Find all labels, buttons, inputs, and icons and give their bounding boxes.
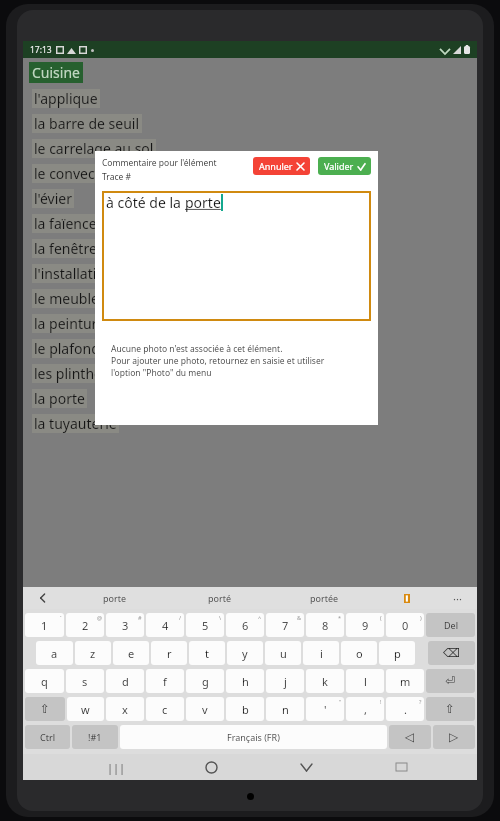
button[interactable]: Recents (69, 754, 164, 780)
button[interactable]: la porte (32, 389, 87, 408)
button[interactable]: ⇧ (426, 697, 475, 721)
button[interactable]: le meuble (32, 289, 101, 308)
button[interactable]: . (386, 697, 424, 721)
button[interactable]: a (36, 641, 73, 665)
button[interactable]: h (226, 669, 264, 693)
button[interactable]: 3 (106, 613, 144, 637)
button[interactable]: 2 (66, 613, 104, 637)
staticText: !#1 (88, 731, 102, 743)
button[interactable]: !#1 (72, 725, 118, 749)
button[interactable]: b (226, 697, 264, 721)
button[interactable]: l'évier (32, 189, 74, 208)
button[interactable]: n (266, 697, 304, 721)
button[interactable]: 8 (306, 613, 344, 637)
button[interactable]: Cuisine (29, 62, 83, 83)
button[interactable]: la faïence (32, 214, 99, 233)
button[interactable]: o (341, 641, 377, 665)
button[interactable]: Del (426, 613, 475, 637)
staticText: n (282, 702, 289, 717)
staticText: z (90, 646, 96, 661)
button[interactable]: l (346, 669, 384, 693)
button[interactable]: à côté de la (102, 191, 371, 321)
button[interactable]: ▷ (433, 725, 475, 749)
button[interactable]: 5 (186, 613, 224, 637)
staticText: " (339, 698, 342, 705)
button[interactable]: q (25, 669, 64, 693)
button[interactable]: r (151, 641, 187, 665)
button[interactable]: la peinture (32, 314, 107, 333)
button[interactable]: Français (FR) (120, 725, 387, 749)
staticText: la fenêtre (34, 239, 97, 258)
button[interactable]: 9 (346, 613, 384, 637)
button[interactable]: Ctrl (25, 725, 70, 749)
staticText: Pour ajouter une photo, retournez en sai… (111, 355, 325, 367)
button[interactable]: porte (63, 587, 167, 609)
button[interactable]: le carrelage au sol (32, 139, 156, 158)
staticText: e (128, 646, 135, 661)
button[interactable]: z (75, 641, 111, 665)
button[interactable]: l'installation électrique (32, 264, 185, 283)
staticText: Annuler (259, 160, 293, 172)
button[interactable]: , (346, 697, 384, 721)
button[interactable]: e (113, 641, 149, 665)
button[interactable]: Previous (23, 587, 63, 609)
button[interactable]: f (146, 669, 184, 693)
button[interactable]: le plafond (32, 339, 102, 358)
staticText: g (202, 674, 209, 689)
button[interactable]: ⏎ (426, 669, 475, 693)
button[interactable]: Clipboard (377, 587, 437, 609)
staticText: l'option "Photo" du menu (111, 367, 212, 379)
staticText: @ (97, 614, 102, 621)
button[interactable]: t (189, 641, 225, 665)
staticText: c (162, 702, 168, 717)
button[interactable]: 6 (226, 613, 264, 637)
staticText: porte (103, 592, 127, 604)
button[interactable]: portée (272, 587, 377, 609)
button[interactable]: s (66, 669, 104, 693)
button[interactable]: k (306, 669, 344, 693)
staticText: 1 (41, 618, 48, 633)
button[interactable]: 0 (386, 613, 424, 637)
button[interactable]: v (186, 697, 224, 721)
staticText: Français (FR) (227, 731, 280, 743)
button[interactable]: j (266, 669, 304, 693)
button[interactable]: p (379, 641, 415, 665)
button[interactable]: c (146, 697, 184, 721)
button[interactable]: Home (164, 754, 259, 780)
button[interactable]: w (67, 697, 104, 721)
button[interactable]: 7 (266, 613, 304, 637)
button[interactable]: porté (167, 587, 272, 609)
button[interactable]: 4 (146, 613, 184, 637)
staticText: ' (324, 702, 327, 717)
button[interactable]: ◁ (389, 725, 431, 749)
button[interactable]: les plinthes (32, 364, 111, 383)
button[interactable]: i (303, 641, 339, 665)
staticText: s (82, 674, 88, 689)
button[interactable]: l'applique (32, 89, 100, 108)
button[interactable]: Annuler (253, 157, 310, 175)
button[interactable]: le convecteur (32, 164, 125, 183)
button[interactable]: la tuyauterie (32, 414, 119, 433)
staticText: à côté de la (106, 193, 185, 212)
button[interactable]: la fenêtre (32, 239, 99, 258)
staticText: Del (444, 619, 458, 631)
button[interactable]: Change keyboard (354, 754, 449, 780)
button[interactable]: Valider (318, 157, 371, 175)
button[interactable]: More options (437, 587, 477, 609)
button[interactable]: 1 (25, 613, 64, 637)
button[interactable]: y (227, 641, 263, 665)
staticText: Trace # (102, 171, 131, 183)
button[interactable]: m (386, 669, 424, 693)
button[interactable]: la barre de seuil (32, 114, 142, 133)
button[interactable]: u (265, 641, 301, 665)
button[interactable]: ' (306, 697, 344, 721)
button[interactable]: x (106, 697, 144, 721)
button[interactable]: d (106, 669, 144, 693)
staticText: p (394, 646, 401, 661)
button[interactable]: g (186, 669, 224, 693)
staticText: v (202, 702, 208, 717)
staticText: w (81, 702, 90, 717)
button[interactable]: Hide keyboard (259, 754, 354, 780)
button[interactable]: ⇧ (25, 697, 65, 721)
button[interactable]: ⌫ (428, 641, 475, 665)
